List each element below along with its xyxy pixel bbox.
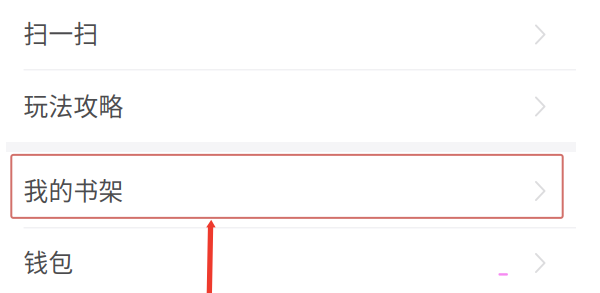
button[interactable]: 扫一扫 [6,0,576,69]
staticText: 扫一扫 [24,15,99,50]
button[interactable]: 我的书架 [6,152,576,227]
button[interactable]: 玩法攻略 [6,71,576,142]
button[interactable]: 钱包 [6,229,576,293]
staticText: 钱包 [24,244,74,279]
staticText: 我的书架 [24,172,124,207]
staticText: 玩法攻略 [24,87,124,123]
